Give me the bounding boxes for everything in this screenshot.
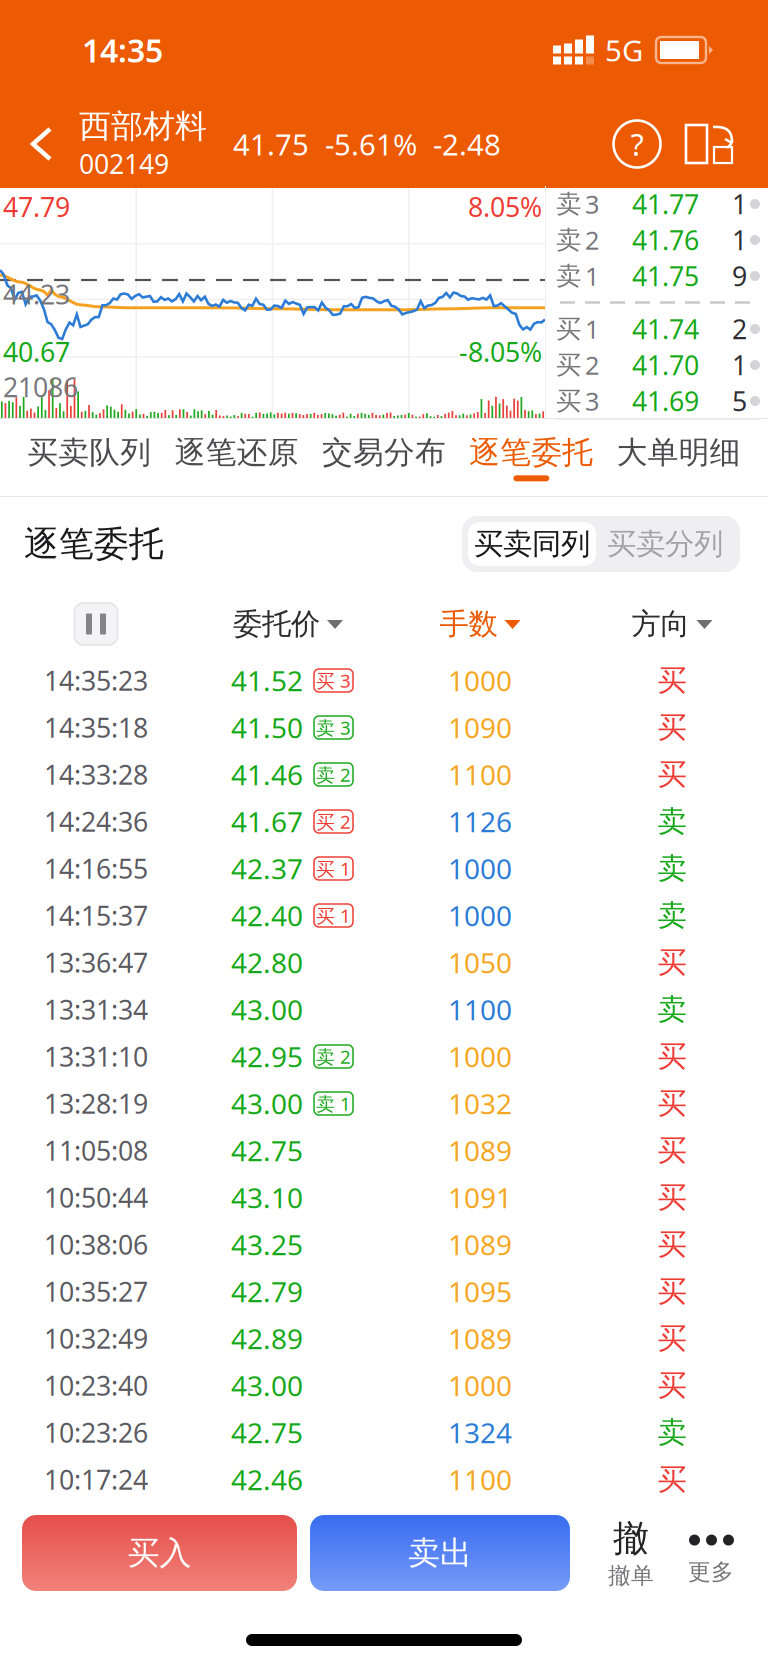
staticText: 逐笔还原 (175, 434, 299, 471)
staticText: 14:24:36 (44, 804, 148, 839)
staticText: 买卖队列 (27, 434, 151, 471)
staticText: 买卖分列 (607, 526, 723, 562)
button[interactable]: 更多 (671, 1511, 751, 1595)
staticText: 1 (585, 259, 599, 293)
staticText: 43.00 (231, 1085, 303, 1122)
staticText: 42.40 (231, 897, 303, 934)
staticText: 买 (556, 349, 581, 380)
staticText: 13:31:10 (44, 1039, 148, 1074)
staticText: 41.75 (233, 124, 309, 163)
staticText: 卖 3 (316, 715, 351, 740)
button[interactable]: 暂停 (74, 603, 117, 645)
staticText: 1089 (448, 1320, 512, 1357)
staticText: 卖 (657, 803, 686, 839)
staticText: -8.05% (459, 334, 542, 369)
staticText: 买 1 (316, 903, 351, 928)
staticText: 1090 (448, 709, 512, 746)
staticText: 42.46 (231, 1461, 303, 1498)
staticText: 交易分布 (322, 434, 446, 471)
staticText: 买卖同列 (474, 526, 590, 562)
staticText: 撤 (613, 1516, 649, 1561)
staticText: 买 (657, 1226, 686, 1262)
staticText: 14:16:55 (44, 851, 148, 886)
staticText: 方向 (631, 606, 689, 642)
staticText: 41.76 (632, 222, 699, 258)
staticText: 卖 (556, 188, 581, 219)
staticText: 13:28:19 (44, 1086, 148, 1121)
staticText: 40.67 (3, 334, 70, 369)
button[interactable]: 方向 (631, 591, 712, 657)
staticText: 41.77 (632, 186, 699, 222)
staticText: 41.50 (231, 709, 303, 746)
staticText: -2.48 (433, 124, 501, 163)
staticText: 买 (657, 1085, 686, 1121)
staticText: 41.74 (632, 311, 699, 347)
button[interactable]: 买入 (22, 1515, 297, 1591)
button[interactable]: 买卖同列 (468, 522, 596, 566)
staticText: 卖 (657, 850, 686, 886)
staticText: 更多 (688, 1558, 734, 1586)
staticText: 1100 (448, 1461, 512, 1498)
staticText: 44.23 (3, 276, 70, 312)
staticText: 41.75 (632, 258, 699, 294)
staticText: 买入 (127, 1533, 191, 1573)
staticText: 41.46 (231, 756, 303, 793)
staticText: 买 (556, 385, 581, 416)
staticText: 卖 (556, 224, 581, 255)
staticText: 卖 (657, 897, 686, 933)
staticText: 1095 (448, 1273, 512, 1310)
button[interactable]: 逐笔还原 (175, 420, 299, 494)
button[interactable]: 交易分布 (322, 420, 446, 494)
button[interactable]: 买卖队列 (27, 420, 151, 494)
staticText: 5 (732, 383, 747, 419)
staticText: 3 (585, 384, 599, 418)
staticText: 委托价 (233, 606, 320, 642)
staticText: 买 (657, 1320, 686, 1356)
staticText: 卖 (657, 991, 686, 1027)
staticText: 大单明细 (617, 434, 741, 471)
staticText: 卖出 (408, 1533, 472, 1573)
staticText: 2 (732, 311, 747, 347)
staticText: 卖 2 (316, 762, 351, 787)
staticText: 43.00 (231, 1367, 303, 1404)
staticText: 1000 (448, 850, 512, 887)
staticText: 10:35:27 (44, 1274, 148, 1309)
staticText: 逐笔委托 (469, 434, 593, 471)
staticText: 买 2 (316, 809, 351, 834)
staticText: 43.00 (231, 991, 303, 1028)
staticText: 1089 (448, 1226, 512, 1263)
staticText: 8.05% (468, 189, 542, 224)
staticText: 41.69 (632, 383, 699, 419)
staticText: 14:35 (82, 29, 163, 71)
button[interactable]: 返回 (18, 110, 72, 178)
staticText: 42.95 (231, 1038, 303, 1075)
button[interactable]: 委托价 (233, 591, 343, 657)
button[interactable]: 卖出 (310, 1515, 570, 1591)
staticText: 1 (732, 347, 747, 383)
button[interactable]: 手数 (439, 591, 520, 657)
button[interactable]: 撤 (591, 1511, 671, 1595)
staticText: 买 (657, 1132, 686, 1168)
staticText: 13:36:47 (44, 945, 148, 980)
staticText: 10:17:24 (44, 1462, 148, 1497)
staticText: 卖 (657, 1414, 686, 1450)
button[interactable]: 大单明细 (617, 420, 741, 494)
staticText: 1000 (448, 1367, 512, 1404)
staticText: 买 (657, 944, 686, 980)
staticText: 1100 (448, 756, 512, 793)
staticText: 14:33:28 (44, 757, 148, 792)
staticText: 买 (657, 1461, 686, 1497)
button[interactable]: 分享 (682, 116, 738, 172)
staticText: 买 1 (316, 856, 351, 881)
staticText: 1032 (448, 1085, 512, 1122)
button[interactable]: 逐笔委托 (469, 420, 593, 494)
staticText: 42.37 (231, 850, 303, 887)
staticText: 逐笔委托 (24, 523, 164, 565)
staticText: 卖 2 (316, 1044, 351, 1069)
staticText: 1 (732, 222, 747, 258)
button[interactable]: 买卖分列 (596, 522, 734, 566)
button[interactable]: 帮助 (612, 119, 662, 169)
staticText: 1126 (448, 803, 512, 840)
staticText: 42.89 (231, 1320, 303, 1357)
staticText: 10:50:44 (44, 1180, 148, 1215)
